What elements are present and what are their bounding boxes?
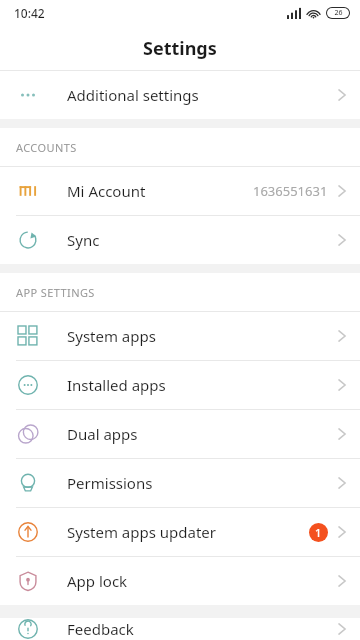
staticText: 26 bbox=[334, 8, 343, 18]
button[interactable]: Feedback bbox=[0, 618, 360, 640]
staticText: Installed apps bbox=[67, 375, 166, 395]
staticText: 1636551631 bbox=[253, 182, 328, 200]
staticText: App lock bbox=[67, 571, 128, 591]
staticText: Dual apps bbox=[67, 424, 138, 444]
button[interactable]: App lock bbox=[0, 557, 360, 605]
staticText: ACCOUNTS bbox=[16, 140, 77, 155]
staticText: System apps updater bbox=[67, 522, 217, 542]
staticText: 1 bbox=[315, 525, 322, 540]
button[interactable]: System apps updater bbox=[0, 508, 360, 556]
button[interactable]: Mi Account bbox=[0, 167, 360, 215]
staticText: Feedback bbox=[67, 619, 134, 639]
staticText: Settings bbox=[143, 36, 217, 61]
staticText: APP SETTINGS bbox=[16, 285, 95, 300]
staticText: 10:42 bbox=[14, 5, 45, 21]
staticText: System apps bbox=[67, 326, 156, 346]
staticText: Mi Account bbox=[67, 181, 146, 201]
button[interactable]: Installed apps bbox=[0, 361, 360, 409]
button[interactable]: Permissions bbox=[0, 459, 360, 507]
button[interactable]: Additional settings bbox=[0, 71, 360, 119]
button[interactable]: Dual apps bbox=[0, 410, 360, 458]
button[interactable]: System apps bbox=[0, 312, 360, 360]
staticText: Permissions bbox=[67, 473, 153, 493]
button[interactable]: Sync bbox=[0, 216, 360, 264]
staticText: Sync bbox=[67, 230, 100, 250]
staticText: Additional settings bbox=[67, 85, 199, 105]
